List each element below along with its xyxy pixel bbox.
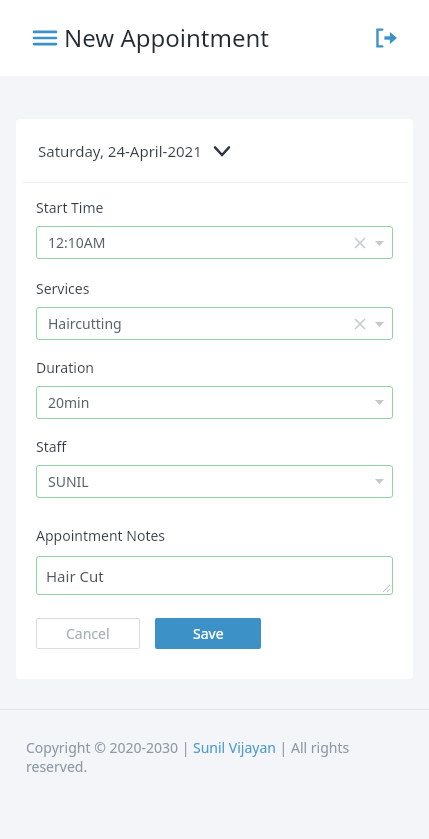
staticText: Services (36, 279, 90, 298)
button[interactable]: Cancel (36, 618, 140, 649)
staticText: Saturday, 24-April-2021 (38, 141, 202, 161)
staticText: Start Time (36, 198, 104, 217)
button[interactable]: 20min (36, 386, 393, 419)
button[interactable]: SUNIL (36, 465, 393, 498)
staticText: Appointment Notes (36, 526, 166, 545)
button[interactable]: Saturday, 24-April-2021 (16, 119, 413, 182)
button[interactable]: 12:10AM (36, 226, 393, 259)
staticText: New Appointment (64, 21, 269, 54)
button[interactable]: Save (155, 618, 261, 649)
staticText: 12:10AM (48, 233, 106, 252)
staticText: Save (193, 624, 224, 643)
staticText: Hair Cut (46, 566, 104, 586)
button[interactable]: Logout (369, 21, 403, 55)
staticText: Copyright © 2020-2030 | Sunil Vijayan | … (26, 738, 350, 757)
staticText: Duration (36, 358, 95, 377)
staticText: 20min (48, 393, 90, 412)
staticText: SUNIL (48, 472, 89, 491)
button[interactable]: Haircutting (36, 307, 393, 340)
staticText: Staff (36, 437, 67, 456)
button[interactable]: Menu (28, 21, 62, 55)
button[interactable]: Hair Cut (36, 556, 393, 595)
staticText: reserved. (26, 757, 88, 776)
staticText: Cancel (66, 624, 110, 643)
staticText: Haircutting (48, 314, 122, 333)
